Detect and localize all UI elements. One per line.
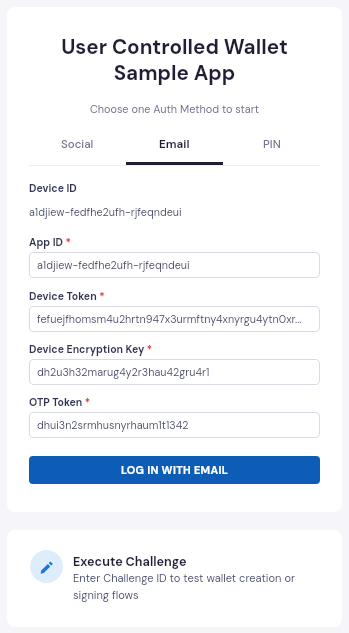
staticText: Execute Challenge xyxy=(73,554,187,570)
staticText: Device ID xyxy=(29,182,77,196)
staticText: a1djiew-fedfhe2ufh-rjfeqndeui xyxy=(37,258,190,272)
staticText: fefuejfhomsm4u2hrtn947x3urmftny4xnyrgu4y… xyxy=(37,312,302,326)
staticText: User Controlled Wallet Sample App xyxy=(29,34,320,87)
staticText: Social xyxy=(61,137,94,152)
staticText: LOG IN WITH EMAIL xyxy=(121,463,229,477)
staticText: Choose one Auth Method to start xyxy=(29,102,320,116)
staticText: Device Token * xyxy=(29,290,105,304)
staticText: dhui3n2srmhusnyrhaum1t1342 xyxy=(37,418,189,432)
staticText: a1djiew-fedfhe2ufh-rjfeqndeui xyxy=(29,205,182,219)
staticText: OTP Token * xyxy=(29,396,91,410)
button[interactable]: Email xyxy=(126,134,223,165)
button[interactable]: dh2u3h32marug4y2r3hau42gru4r1 xyxy=(29,359,320,385)
button[interactable]: a1djiew-fedfhe2ufh-rjfeqndeui xyxy=(29,252,320,278)
staticText: dh2u3h32marug4y2r3hau42gru4r1 xyxy=(37,365,210,379)
button[interactable]: LOG IN WITH EMAIL xyxy=(29,456,320,484)
button[interactable]: dhui3n2srmhusnyrhaum1t1342 xyxy=(29,412,320,438)
button[interactable]: fefuejfhomsm4u2hrtn947x3urmftny4xnyrgu4y… xyxy=(29,306,320,332)
staticText: App ID * xyxy=(29,236,71,250)
button[interactable]: Execute Challenge xyxy=(7,530,342,627)
button[interactable]: PIN xyxy=(223,134,320,165)
other: Execute Challenge xyxy=(40,561,53,574)
staticText: Enter Challenge ID to test wallet creati… xyxy=(73,571,326,602)
staticText: Device Encryption Key * xyxy=(29,343,153,357)
button[interactable]: Social xyxy=(29,134,126,165)
staticText: PIN xyxy=(263,137,281,152)
staticText: Email xyxy=(159,137,190,152)
